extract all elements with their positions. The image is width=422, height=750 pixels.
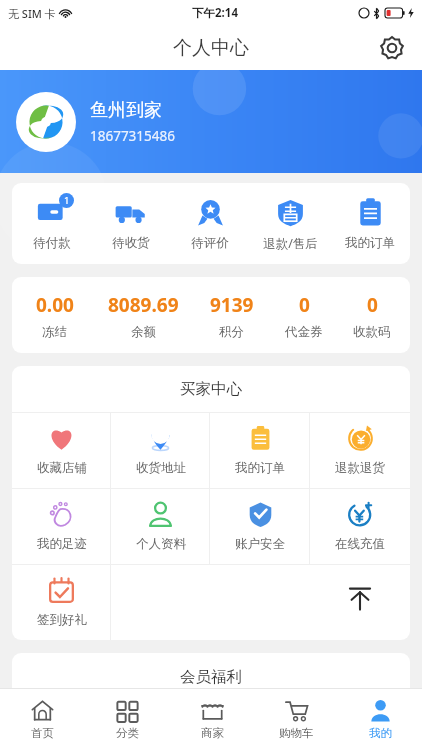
button[interactable]: 账户安全 — [210, 489, 310, 564]
staticText: 首页 — [31, 726, 54, 740]
button[interactable]: 0 — [338, 292, 406, 340]
button[interactable]: 我的订单 — [210, 413, 310, 488]
staticText: 账户安全 — [235, 536, 285, 552]
button[interactable]: 个人资料 — [111, 489, 210, 564]
staticText: 我的 — [369, 726, 392, 740]
button[interactable]: 分类 — [85, 689, 170, 750]
button[interactable]: 退款/售后 — [250, 197, 330, 252]
staticText: 在线充值 — [335, 536, 385, 552]
staticText: 1 — [64, 194, 70, 207]
staticText: 退款退货 — [335, 460, 385, 476]
button[interactable]: 1 — [12, 197, 91, 251]
button[interactable]: Settings — [374, 30, 410, 66]
button[interactable]: Collapse — [310, 565, 410, 640]
staticText: 收款码 — [353, 324, 391, 340]
staticText: 0 — [299, 292, 310, 318]
staticText: 个人中心 — [173, 36, 249, 60]
staticText: 分类 — [116, 726, 139, 740]
button[interactable]: 首页 — [0, 689, 85, 750]
staticText: 购物车 — [279, 726, 314, 740]
button[interactable]: 收藏店铺 — [12, 413, 111, 488]
staticText: 0 — [367, 292, 378, 318]
staticText: 我的足迹 — [37, 536, 87, 552]
button[interactable]: 我的足迹 — [12, 489, 111, 564]
staticText: 收藏店铺 — [37, 460, 87, 476]
button[interactable]: 9139 — [193, 292, 270, 340]
button[interactable]: 0.00 — [16, 292, 93, 340]
staticText: 我的订单 — [345, 235, 395, 251]
button[interactable]: 在线充值 — [310, 489, 410, 564]
staticText: 我的订单 — [235, 460, 285, 476]
staticText: 下午2:14 — [192, 5, 238, 21]
staticText: 待评价 — [191, 235, 229, 251]
staticText: 个人资料 — [136, 536, 186, 552]
staticText: 冻结 — [42, 324, 67, 340]
button[interactable]: 待收货 — [91, 197, 170, 251]
staticText: 18677315486 — [90, 127, 175, 145]
staticText: 代金券 — [285, 324, 323, 340]
staticText: 收货地址 — [136, 460, 186, 476]
button[interactable]: 购物车 — [254, 689, 338, 750]
button[interactable]: 商家 — [170, 689, 254, 750]
staticText: 商家 — [201, 726, 224, 740]
button[interactable]: 我的订单 — [330, 197, 410, 251]
button[interactable]: 8089.69 — [93, 292, 193, 340]
staticText: 无 SIM 卡 — [8, 6, 56, 21]
button[interactable]: 鱼州到家 — [0, 70, 422, 173]
staticText: 会员福利 — [180, 667, 242, 687]
button[interactable]: 0 — [270, 292, 338, 340]
button[interactable]: 待评价 — [170, 197, 250, 251]
staticText: 待收货 — [112, 235, 150, 251]
staticText: 签到好礼 — [37, 612, 87, 628]
staticText: 退款/售后 — [263, 235, 318, 252]
button[interactable]: 收货地址 — [111, 413, 210, 488]
button[interactable]: 签到好礼 — [12, 565, 111, 640]
staticText: 买家中心 — [180, 379, 242, 399]
staticText: 鱼州到家 — [90, 99, 162, 122]
staticText: 8089.69 — [108, 292, 179, 318]
staticText: 待付款 — [33, 235, 71, 251]
staticText: 积分 — [219, 324, 244, 340]
staticText: 9139 — [210, 292, 254, 318]
staticText: 余额 — [131, 324, 156, 340]
button[interactable]: 退款退货 — [310, 413, 410, 488]
staticText: 0.00 — [36, 292, 74, 318]
button[interactable]: 我的 — [338, 689, 422, 750]
